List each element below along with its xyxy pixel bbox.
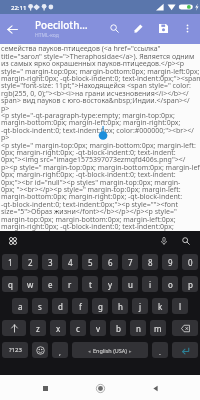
staticText: margin-right:0px; -qt-block-indent:0; te… bbox=[1, 74, 200, 84]
button[interactable]: f bbox=[72, 298, 88, 314]
staticText: i bbox=[149, 279, 152, 290]
button[interactable]: Recent apps bbox=[35, 378, 55, 398]
button[interactable]: p bbox=[182, 276, 198, 292]
button[interactable]: Voice input bbox=[157, 234, 171, 248]
staticText: English (USA) bbox=[93, 347, 127, 354]
button[interactable]: 1 bbox=[2, 254, 18, 270]
button[interactable]: 5 bbox=[82, 254, 98, 270]
staticText: d bbox=[58, 301, 63, 312]
button[interactable]: ◂ bbox=[72, 342, 148, 358]
staticText: . bbox=[159, 348, 161, 358]
staticText: ◂ bbox=[88, 348, 91, 354]
button[interactable]: s bbox=[32, 298, 48, 314]
staticText: x bbox=[56, 323, 61, 334]
staticText: margin-bottom:0px; margin-right:0px; -qt… bbox=[1, 192, 200, 202]
staticText: g bbox=[98, 301, 103, 312]
staticText: r bbox=[68, 279, 72, 290]
staticText: margin-top:0px; margin-bottom:0px; margi… bbox=[1, 215, 200, 225]
button[interactable]: 3 bbox=[42, 254, 58, 270]
staticText: e bbox=[48, 279, 53, 290]
button[interactable]: Back bbox=[4, 21, 20, 37]
staticText: 0 bbox=[188, 257, 193, 268]
button[interactable]: x bbox=[50, 320, 66, 336]
button[interactable]: r bbox=[62, 276, 78, 292]
button[interactable]: Shift bbox=[2, 320, 26, 336]
staticText: семейства пауков-птицеедов (<a href="ссы… bbox=[1, 44, 200, 54]
staticText: ▸ bbox=[129, 348, 132, 354]
button[interactable]: v bbox=[90, 320, 106, 336]
staticText: 0px; margin-right:0px; -qt-block-indent:… bbox=[1, 148, 200, 158]
staticText: 9 bbox=[168, 257, 173, 268]
button[interactable]: j bbox=[132, 298, 148, 314]
staticText: <p style="-qt-paragraph-type:empty; marg… bbox=[1, 111, 200, 121]
button[interactable]: e bbox=[42, 276, 58, 292]
staticText: 3 bbox=[48, 257, 53, 268]
staticText: 0px;"><img src="image1575397073ezmqfd406… bbox=[1, 155, 200, 165]
button[interactable]: Enter bbox=[172, 342, 198, 358]
button[interactable]: ?123 bbox=[2, 342, 28, 358]
button[interactable]: c bbox=[70, 320, 86, 336]
button[interactable]: i bbox=[142, 276, 158, 292]
button[interactable]: Edit bbox=[131, 21, 145, 35]
staticText: p bbox=[188, 279, 193, 290]
button[interactable]: t bbox=[82, 276, 98, 292]
button[interactable]: Home bbox=[90, 378, 110, 398]
staticText: n bbox=[136, 323, 141, 334]
button[interactable]: 6 bbox=[102, 254, 118, 270]
button[interactable]: k bbox=[152, 298, 168, 314]
staticText: HTML-код bbox=[35, 32, 59, 39]
button[interactable]: 9 bbox=[162, 254, 178, 270]
button[interactable]: Emoji bbox=[32, 342, 48, 358]
button[interactable]: , bbox=[52, 342, 68, 358]
button[interactable]: 2 bbox=[22, 254, 38, 270]
staticText: l bbox=[179, 301, 182, 312]
staticText: margin-bottom:0px; margin-left:0px; marg… bbox=[1, 118, 200, 128]
button[interactable]: a bbox=[12, 298, 28, 314]
button[interactable]: n bbox=[130, 320, 146, 336]
button[interactable]: More options bbox=[180, 21, 194, 35]
staticText: style="font-size: 11pt;">Находящейся <sp… bbox=[1, 81, 200, 91]
button[interactable]: d bbox=[52, 298, 68, 314]
button[interactable]: m bbox=[150, 320, 166, 336]
button[interactable]: o bbox=[162, 276, 178, 292]
staticText: 0px;"><br id="null"><p styles" margin-to… bbox=[1, 178, 200, 188]
staticText: 2 bbox=[28, 257, 33, 268]
staticText: b bbox=[116, 323, 121, 334]
staticText: m bbox=[154, 323, 162, 334]
staticText: -qt-block-indent:0; text-indent:0px;"><p… bbox=[1, 200, 200, 210]
button[interactable]: 0 bbox=[182, 254, 198, 270]
staticText: style=" margin-top:0px; margin-bottom:0p… bbox=[1, 67, 200, 77]
button[interactable]: l bbox=[172, 298, 188, 314]
button[interactable]: u bbox=[122, 276, 138, 292]
button[interactable]: q bbox=[2, 276, 18, 292]
button[interactable]: Back bbox=[145, 378, 165, 398]
button[interactable]: h bbox=[112, 298, 128, 314]
button[interactable]: Search bbox=[107, 21, 121, 35]
staticText: p> bbox=[1, 104, 200, 114]
staticText: h bbox=[118, 301, 123, 312]
button[interactable]: Backspace bbox=[172, 320, 198, 336]
staticText: u bbox=[128, 279, 133, 290]
staticText: 1 bbox=[8, 257, 13, 268]
staticText: z bbox=[36, 323, 40, 334]
button[interactable]: 7 bbox=[122, 254, 138, 270]
button[interactable]: g bbox=[92, 298, 108, 314]
staticText: 5 bbox=[88, 257, 93, 268]
button[interactable]: y bbox=[102, 276, 118, 292]
button[interactable]: z bbox=[30, 320, 46, 336]
button[interactable]: b bbox=[110, 320, 126, 336]
staticText: 0px; "><br></p><p style=" margin-top:0px… bbox=[1, 185, 200, 195]
button[interactable]: 4 bbox=[62, 254, 78, 270]
button[interactable]: 8 bbox=[142, 254, 158, 270]
button[interactable]: . bbox=[152, 342, 168, 358]
button[interactable]: w bbox=[22, 276, 38, 292]
button[interactable]: Save bbox=[156, 21, 170, 35]
staticText: a bbox=[18, 301, 23, 312]
button[interactable]: Search bbox=[179, 234, 193, 248]
staticText: c bbox=[76, 323, 80, 334]
staticText: 22:11 bbox=[11, 4, 27, 12]
staticText: v bbox=[96, 323, 101, 334]
staticText: q bbox=[8, 279, 13, 290]
staticText: k bbox=[158, 301, 163, 312]
button[interactable]: Keyboard options bbox=[6, 234, 20, 248]
